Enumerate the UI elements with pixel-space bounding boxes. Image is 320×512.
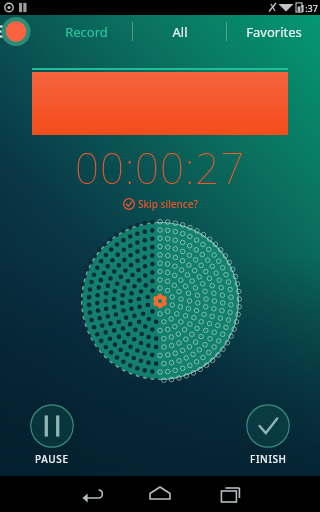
button[interactable]: Open navigation menu [0,15,40,48]
staticText: Record [65,23,108,41]
button[interactable]: FINISH [240,402,296,468]
staticText: 1:37 [300,2,318,14]
button[interactable] [32,72,288,135]
staticText: FINISH [250,452,287,466]
staticText: Skip silence? [138,197,198,211]
staticText: All [172,23,188,41]
button[interactable]: Record [40,15,132,48]
button[interactable]: Skip silence? [123,197,198,211]
staticText: PAUSE [35,452,69,466]
button[interactable]: All [133,15,226,48]
button[interactable]: PAUSE [24,402,80,468]
staticText: 00:00:27 [75,139,246,196]
button[interactable]: Favorites [227,15,320,48]
staticText: Favorites [246,23,302,41]
